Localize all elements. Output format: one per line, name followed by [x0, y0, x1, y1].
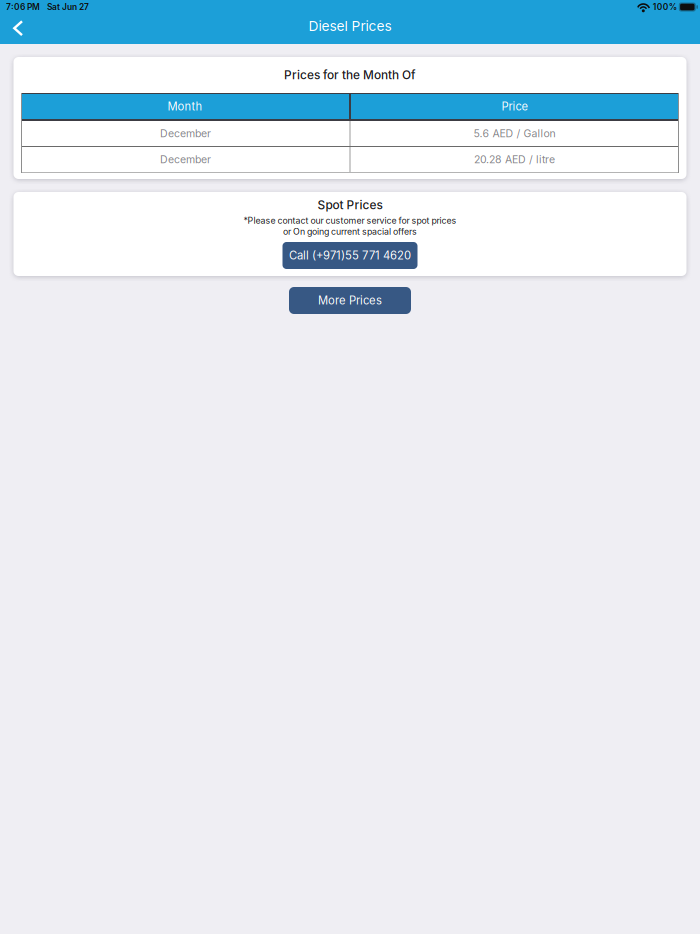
staticText: Diesel Prices	[308, 18, 391, 34]
staticText: December	[160, 127, 211, 140]
staticText: 5.6 AED / Gallon	[473, 127, 555, 140]
staticText: December	[160, 153, 211, 166]
staticText: 20.28 AED / litre	[474, 153, 555, 166]
staticText: or On going current spacial offers	[283, 226, 417, 237]
staticText: 100%	[653, 2, 677, 12]
staticText: More Prices	[318, 294, 382, 307]
staticText: Spot Prices	[317, 198, 382, 212]
staticText: 7:06 PM	[6, 2, 40, 12]
staticText: Price	[501, 100, 528, 113]
button[interactable]: More Prices	[289, 287, 411, 314]
staticText: Prices for the Month Of	[284, 68, 416, 82]
staticText: Sat Jun 27	[47, 2, 89, 12]
staticText: Call (+971)55 771 4620	[289, 249, 411, 262]
button[interactable]: Call (+971)55 771 4620	[282, 242, 417, 269]
button[interactable]: Back	[0, 14, 44, 44]
staticText: Month	[167, 100, 202, 113]
staticText: *Please contact our customer service for…	[243, 215, 456, 226]
